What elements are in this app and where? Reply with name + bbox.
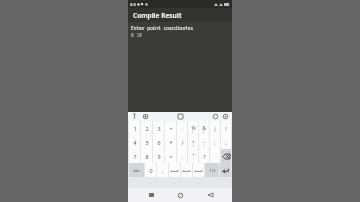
button[interactable]: Text format — [132, 114, 137, 119]
button[interactable]: ! — [221, 121, 231, 135]
staticText: ? — [203, 153, 206, 160]
staticText: ( — [192, 129, 194, 134]
staticText: 3 — [157, 125, 161, 132]
button[interactable]: abc — [129, 163, 144, 177]
button[interactable] — [169, 163, 180, 177]
button[interactable]: 3 — [153, 121, 164, 135]
staticText: < — [192, 143, 195, 148]
button[interactable]: ^ — [188, 135, 198, 149]
button[interactable]: 5 — [141, 135, 152, 149]
staticText: ! — [225, 125, 227, 132]
staticText: 2 — [145, 125, 149, 132]
button[interactable]: - — [177, 121, 187, 135]
button[interactable]: Settings — [143, 114, 148, 119]
staticText: 9 — [157, 153, 161, 160]
button[interactable]: 2 — [141, 121, 152, 135]
staticText: 1/2 — [209, 168, 216, 173]
button[interactable]: Clipboard — [178, 114, 183, 119]
staticText: . — [181, 153, 183, 160]
button[interactable]: 9 — [153, 149, 164, 163]
staticText: 5:5 — [130, 2, 136, 7]
button[interactable]: 6 — [153, 135, 164, 149]
button[interactable]: = — [165, 149, 176, 163]
button[interactable]: Backspace — [221, 149, 231, 163]
staticText: ; — [225, 139, 227, 146]
button[interactable]: 8 — [141, 149, 152, 163]
button[interactable]: 1 — [129, 121, 140, 135]
button[interactable]: . — [177, 149, 187, 163]
button[interactable]: Compile Result — [128, 8, 232, 22]
staticText: > — [203, 143, 206, 148]
button[interactable]: Enter — [220, 163, 231, 177]
staticText: - — [181, 125, 183, 132]
button[interactable]: Recents — [144, 188, 158, 202]
staticText: , — [162, 167, 164, 174]
staticText: 8 — [145, 153, 149, 160]
staticText: ~ — [203, 139, 206, 146]
staticText: 4 — [133, 139, 137, 146]
staticText: | — [213, 125, 217, 132]
staticText: Compile Result — [133, 11, 182, 20]
button[interactable]: 7 — [129, 149, 140, 163]
button[interactable]: & — [199, 121, 209, 135]
button[interactable]: Theme — [213, 114, 218, 119]
staticText: 1 — [133, 125, 137, 132]
button[interactable]: ~ — [199, 135, 209, 149]
staticText: abc — [133, 168, 140, 173]
staticText: = — [169, 153, 173, 160]
staticText: + — [169, 125, 173, 132]
button[interactable]: " — [188, 149, 198, 163]
button[interactable]: : — [210, 135, 220, 149]
button[interactable]: , — [157, 163, 168, 177]
staticText: " — [192, 153, 195, 160]
staticText: & — [202, 125, 206, 132]
button[interactable]: 1/2 — [205, 163, 219, 177]
button[interactable]: 0 — [145, 163, 156, 177]
button[interactable]: | — [210, 121, 220, 135]
staticText: ' — [193, 157, 194, 162]
staticText: 0 — [149, 167, 153, 174]
staticText: 5 — [145, 139, 149, 146]
button[interactable]: ? — [199, 149, 209, 163]
staticText: 7 — [133, 153, 137, 160]
button[interactable]: * — [165, 135, 176, 149]
staticText: ) — [203, 129, 205, 134]
staticText: 0 10 — [131, 32, 142, 38]
button[interactable] — [193, 163, 204, 177]
button[interactable]: % — [188, 121, 198, 135]
button[interactable]: Home — [173, 188, 187, 202]
button[interactable]: ; — [221, 135, 231, 149]
button[interactable] — [181, 163, 192, 177]
button[interactable]: 4 — [129, 135, 140, 149]
staticText: Enter point coordinates — [131, 25, 194, 31]
staticText: : — [214, 139, 216, 146]
button[interactable]: Back — [203, 188, 217, 202]
button[interactable]: + — [165, 121, 176, 135]
staticText: % — [191, 125, 196, 132]
button[interactable]: More options — [223, 114, 228, 119]
staticText: ^ — [192, 139, 195, 146]
button[interactable]: / — [177, 135, 187, 149]
staticText: / — [181, 139, 184, 146]
staticText: * — [169, 139, 173, 146]
staticText: 6 — [157, 139, 161, 146]
